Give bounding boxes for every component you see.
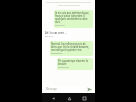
button[interactable]: Ah ! tu vas venir … <box>44 30 71 39</box>
button[interactable]: Je ne suis pas météorologue, <box>54 10 93 28</box>
button[interactable]: Back <box>49 94 57 102</box>
staticText: jeu. 8:12 <box>45 35 53 38</box>
staticText: quelques centimètres cette <box>55 17 88 20</box>
staticText: nuit. <box>55 20 61 23</box>
staticText: Normal t'as tellement pris de <box>51 42 86 45</box>
button[interactable]: Ptt quasimque devenir la <box>57 58 93 70</box>
staticText: Les messages sont chiffrés de bout en bo… <box>46 1 91 4</box>
staticText: Maintenant <box>58 66 69 69</box>
button[interactable]: Normal t'as tellement pris de <box>50 41 93 56</box>
staticText: normal que la pointe rien. <box>51 48 83 51</box>
staticText: mer. 22:46 <box>55 24 65 27</box>
button[interactable]: Home <box>65 94 73 102</box>
button[interactable]: Message <box>44 86 85 92</box>
staticText: Ah ! tu vas venir … <box>45 31 67 34</box>
staticText: Maintenant <box>51 52 62 55</box>
staticText: Ptt quasimque devenir la <box>58 59 88 62</box>
staticText: mais je peux t'attendre à <box>55 14 85 17</box>
button[interactable]: Send <box>86 86 93 93</box>
staticText: Je ne suis pas météorologue, <box>55 11 90 14</box>
staticText: dans cette discussion <box>58 4 80 7</box>
staticText: Message <box>46 87 57 91</box>
button[interactable]: Recent apps <box>80 94 88 102</box>
staticText: beauté <box>58 62 67 65</box>
staticText: bites que t'es la chialte bavante, <box>51 45 90 48</box>
